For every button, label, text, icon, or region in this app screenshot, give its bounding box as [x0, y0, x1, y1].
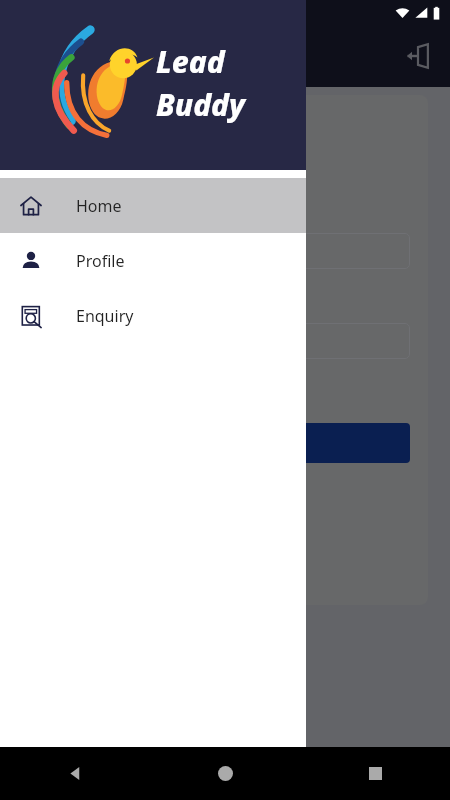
staticText: Profile — [76, 250, 125, 272]
staticText: Home — [76, 195, 122, 217]
button[interactable]: Home — [150, 747, 300, 800]
button[interactable]: Home — [0, 178, 306, 233]
button[interactable]: Logout — [396, 34, 440, 78]
staticText: Buddy — [156, 84, 246, 125]
button[interactable]: Profile — [0, 233, 306, 288]
button[interactable] — [38, 233, 410, 269]
button[interactable]: Enquiry — [0, 288, 306, 343]
staticText: Enquiry — [76, 305, 134, 327]
button[interactable] — [38, 323, 410, 359]
staticText: Lead — [156, 41, 225, 82]
button[interactable]: Recent apps — [300, 747, 450, 800]
button[interactable]: Back — [0, 747, 150, 800]
button[interactable] — [38, 423, 410, 463]
